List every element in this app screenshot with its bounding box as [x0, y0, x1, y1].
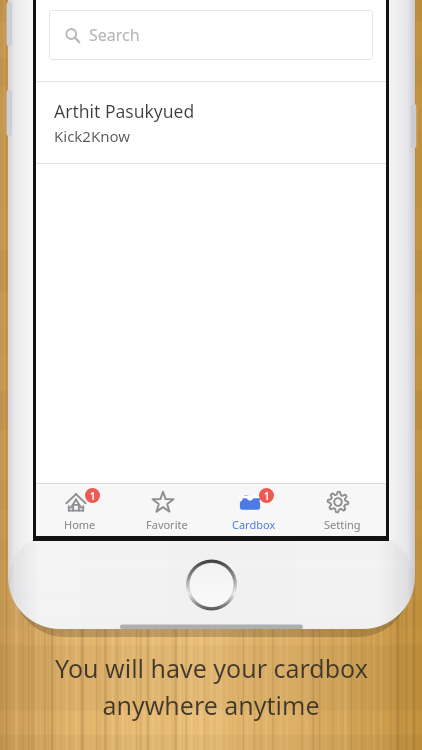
staticText: Kick2Know [54, 126, 131, 146]
staticText: Favorite [146, 517, 188, 532]
button[interactable]: Favorite [123, 484, 210, 536]
staticText: Search [89, 24, 140, 46]
staticText: 1 [264, 489, 270, 503]
staticText: Arthit Pasukyued [54, 99, 195, 123]
button[interactable]: Arthit Pasukyued [36, 82, 386, 163]
staticText: Cardbox [232, 517, 276, 532]
button[interactable]: Cardbox [210, 484, 298, 536]
staticText: Home [64, 517, 96, 532]
button[interactable]: Search [49, 10, 373, 60]
button[interactable]: Home [36, 484, 123, 536]
staticText: 1 [90, 489, 96, 503]
staticText: Setting [324, 517, 361, 532]
staticText: You will have your cardbox [55, 651, 368, 685]
staticText: anywhere anytime [102, 688, 320, 722]
button[interactable]: Setting [298, 484, 386, 536]
